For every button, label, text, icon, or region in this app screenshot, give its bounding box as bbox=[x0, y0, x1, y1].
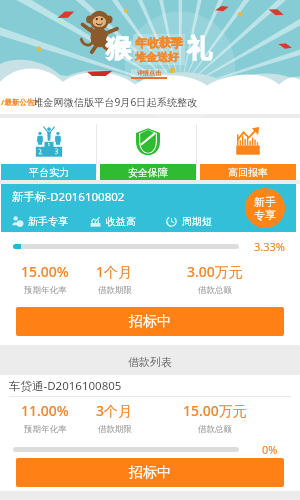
staticText: 借款总额 bbox=[198, 424, 232, 435]
staticText: 新手标-D2016100802 bbox=[12, 189, 125, 205]
staticText: 安全保障 bbox=[128, 166, 168, 179]
staticText: 收益高 bbox=[106, 215, 136, 228]
other: 平台实力 bbox=[35, 125, 63, 158]
staticText: 高回报率 bbox=[228, 166, 268, 179]
other: 高回报率 bbox=[234, 125, 262, 158]
staticText: 车贷通-D2016100805 bbox=[9, 378, 122, 394]
staticText: 15.00万元 bbox=[183, 401, 247, 420]
staticText: 预期年化率 bbox=[24, 285, 67, 296]
button[interactable]: 新手 专享 bbox=[245, 188, 285, 228]
button[interactable]: 详情点击 bbox=[131, 69, 167, 77]
staticText: 招标中 bbox=[129, 313, 171, 331]
staticText: 11.00% bbox=[21, 401, 69, 420]
button[interactable]: 平台实力 bbox=[1, 118, 96, 180]
staticText: 周期短 bbox=[182, 215, 212, 228]
button[interactable]: 高回报率 bbox=[200, 118, 296, 180]
staticText: 3.33% bbox=[254, 239, 285, 254]
staticText: 借款期限 bbox=[98, 424, 132, 435]
staticText: 招标中 bbox=[129, 464, 171, 482]
staticText: /最新公告/ bbox=[1, 97, 38, 107]
staticText: 详情点击 bbox=[137, 69, 161, 77]
staticText: 新手 专享 bbox=[254, 195, 276, 222]
button[interactable]: 新手标-D2016100802 bbox=[1, 184, 296, 232]
staticText: 3.00万元 bbox=[187, 262, 243, 281]
staticText: 新手专享 bbox=[28, 215, 68, 228]
staticText: 堆金网微信版平台9月6日起系统整改 bbox=[33, 95, 198, 109]
staticText: 借款总额 bbox=[198, 285, 232, 296]
staticText: 1个月 bbox=[96, 262, 133, 281]
staticText: 礼 bbox=[187, 33, 212, 64]
staticText: 预期年化率 bbox=[24, 424, 67, 435]
button[interactable]: /最新公告/ bbox=[0, 89, 300, 114]
staticText: 猴 bbox=[106, 33, 131, 64]
button[interactable]: 招标中 bbox=[16, 458, 284, 487]
button[interactable]: 安全保障 bbox=[100, 118, 196, 180]
staticText: 堆金送好 bbox=[135, 50, 179, 64]
other: 安全保障 bbox=[134, 125, 162, 158]
staticText: 15.00% bbox=[21, 262, 69, 281]
staticText: 借款列表 bbox=[128, 355, 172, 369]
other: 猴年活动 bbox=[80, 9, 122, 53]
staticText: 平台实力 bbox=[29, 166, 69, 179]
staticText: 3个月 bbox=[96, 401, 133, 420]
button[interactable]: 猴年活动 bbox=[0, 0, 300, 89]
button[interactable]: 招标中 bbox=[16, 307, 284, 336]
staticText: 0% bbox=[262, 442, 278, 457]
staticText: 借款期限 bbox=[98, 285, 132, 296]
staticText: 年收获季 bbox=[135, 35, 183, 50]
button[interactable]: 车贷通-D2016100805 bbox=[0, 375, 300, 396]
